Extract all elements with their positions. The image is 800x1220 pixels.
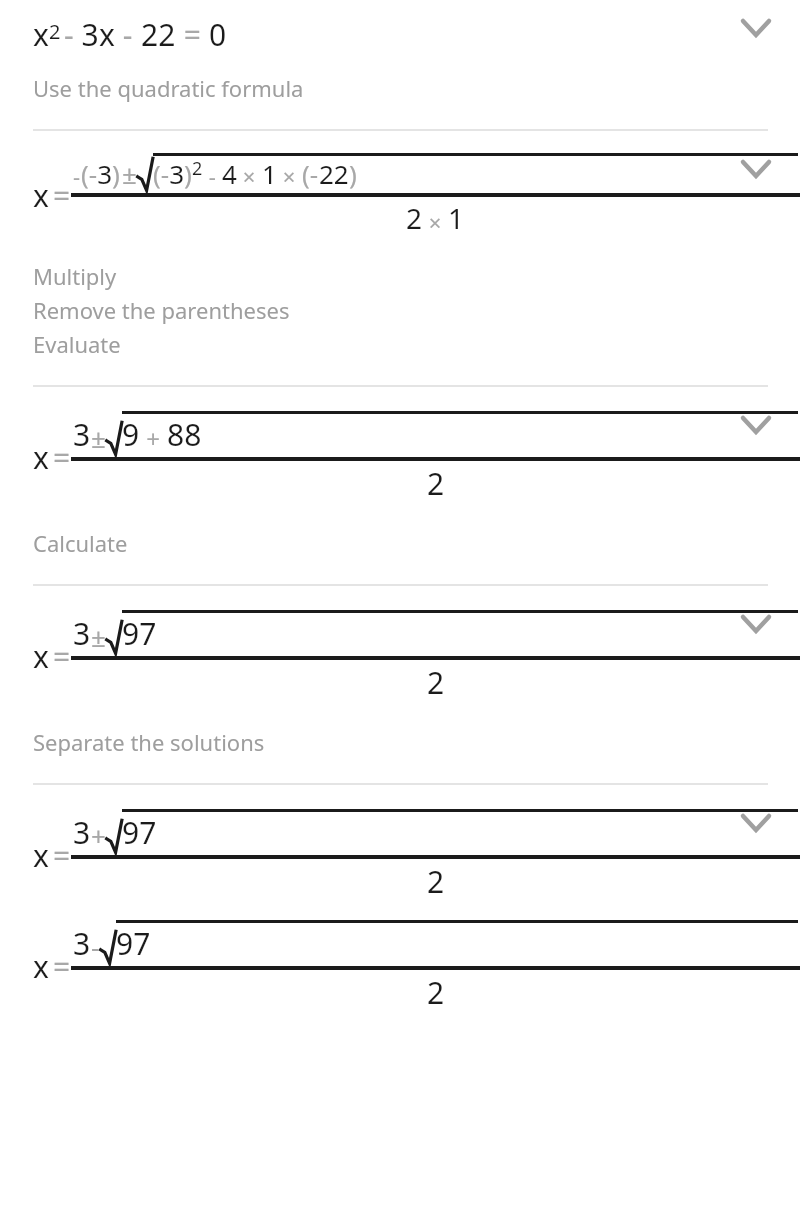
staticText: × <box>277 161 302 191</box>
staticText: 22 <box>319 156 349 191</box>
button[interactable]: x <box>0 785 800 1013</box>
staticText: x <box>33 437 49 478</box>
staticText: x <box>33 835 49 876</box>
staticText: ± <box>122 156 137 191</box>
staticText: x <box>33 636 49 677</box>
staticText: Multiply <box>33 261 117 291</box>
staticText: (-3) <box>153 156 192 191</box>
staticText: ± <box>91 619 106 654</box>
staticText: 2 <box>406 199 423 237</box>
staticText: 22 <box>141 14 176 55</box>
staticText: - <box>91 929 100 964</box>
staticText: 2 <box>427 861 445 902</box>
staticText: - <box>73 161 81 191</box>
staticText: x <box>33 175 49 216</box>
button[interactable]: Expand step <box>728 0 784 56</box>
staticText: ) <box>349 156 357 191</box>
staticText: Remove the parentheses <box>33 295 290 325</box>
staticText: 88 <box>167 414 202 455</box>
staticText: = <box>53 946 71 987</box>
staticText: 2 <box>192 156 203 181</box>
button[interactable]: Expand step <box>728 596 784 652</box>
staticText: x <box>99 14 115 55</box>
staticText: Evaluate <box>33 329 121 359</box>
staticText: (- <box>302 156 319 191</box>
staticText: 9 <box>122 414 140 455</box>
staticText: Separate the solutions <box>33 727 265 757</box>
staticText: 97 <box>122 613 157 654</box>
staticText: - <box>203 161 222 191</box>
staticText: 0 <box>209 14 227 55</box>
staticText: 4 <box>222 156 237 191</box>
staticText: Use the quadratic formula <box>33 73 304 103</box>
staticText: 3 <box>73 613 91 654</box>
staticText: Calculate <box>33 528 128 558</box>
staticText: = <box>176 14 209 55</box>
staticText: - <box>115 14 141 55</box>
staticText: × <box>423 207 448 237</box>
staticText: × <box>237 161 262 191</box>
button[interactable]: Expand step <box>728 141 784 197</box>
staticText: 1 <box>448 199 465 237</box>
staticText: 3 <box>73 812 91 853</box>
staticText: x <box>33 946 49 987</box>
staticText: + <box>91 818 106 853</box>
staticText: 3 <box>73 414 91 455</box>
staticText: 97 <box>116 923 151 964</box>
staticText: 3 <box>73 923 91 964</box>
button[interactable]: x <box>0 131 800 361</box>
staticText: - 3 <box>64 14 99 55</box>
staticText: 2 <box>427 463 445 504</box>
staticText: 2 <box>49 18 61 45</box>
button[interactable]: x <box>0 387 800 560</box>
staticText: (-3) <box>81 156 120 191</box>
staticText: = <box>53 835 71 876</box>
staticText: 97 <box>122 812 157 853</box>
staticText: ± <box>91 420 106 455</box>
button[interactable]: Expand step <box>728 397 784 453</box>
staticText: = <box>53 437 71 478</box>
button[interactable]: x <box>0 586 800 759</box>
staticText: = <box>53 636 71 677</box>
staticText: x <box>33 14 49 55</box>
staticText: + <box>140 422 167 455</box>
staticText: 2 <box>427 662 445 703</box>
staticText: = <box>53 175 71 216</box>
button[interactable]: x <box>0 0 800 105</box>
staticText: 1 <box>262 156 277 191</box>
staticText: 2 <box>427 972 445 1013</box>
button[interactable]: Expand step <box>728 795 784 851</box>
